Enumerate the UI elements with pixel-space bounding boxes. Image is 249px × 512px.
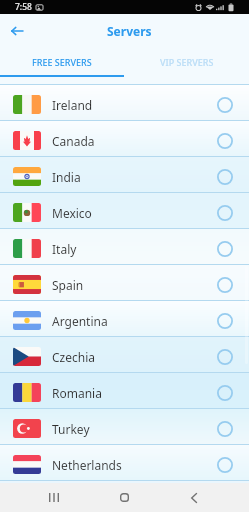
button[interactable]: Back	[159, 483, 229, 512]
button[interactable]: FREE SERVERS	[0, 48, 124, 75]
button[interactable]: Home	[89, 483, 159, 512]
button[interactable]: Recent apps	[19, 483, 89, 512]
button[interactable]: Spain	[0, 265, 249, 300]
staticText: Turkey	[52, 421, 90, 437]
staticText: Mexico	[52, 205, 92, 221]
staticText: Netherlands	[52, 457, 122, 473]
staticText: FREE SERVERS	[32, 56, 92, 68]
button[interactable]: VIP SERVERS	[124, 48, 249, 75]
button[interactable]: Back	[4, 18, 30, 44]
button[interactable]: Canada	[0, 121, 249, 156]
staticText: India	[52, 169, 81, 185]
button[interactable]: Italy	[0, 229, 249, 264]
staticText: VIP SERVERS	[160, 56, 214, 68]
staticText: Czechia	[52, 349, 95, 365]
button[interactable]: Argentina	[0, 301, 249, 336]
staticText: Argentina	[52, 313, 108, 329]
staticText: 7:58	[15, 1, 32, 13]
staticText: Servers	[107, 23, 152, 39]
staticText: Spain	[52, 277, 84, 293]
staticText: Canada	[52, 133, 95, 149]
button[interactable]: Mexico	[0, 193, 249, 228]
staticText: Romania	[52, 385, 102, 401]
staticText: Italy	[52, 241, 77, 257]
button[interactable]: India	[0, 157, 249, 192]
button[interactable]: Ireland	[0, 85, 249, 120]
staticText: Ireland	[52, 97, 93, 113]
button[interactable]: Turkey	[0, 409, 249, 444]
button[interactable]: Czechia	[0, 337, 249, 372]
button[interactable]: Romania	[0, 373, 249, 408]
button[interactable]: Netherlands	[0, 445, 249, 480]
